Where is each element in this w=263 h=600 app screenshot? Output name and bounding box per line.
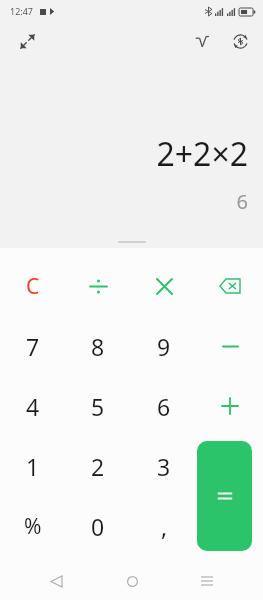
staticText: 9 [157, 331, 171, 362]
staticText: 0 [91, 511, 105, 542]
other: Divide [90, 278, 107, 295]
button[interactable]: 8 [65, 316, 131, 376]
button[interactable]: Collapse [10, 24, 44, 58]
button[interactable]: Recents [187, 562, 227, 600]
staticText: 3 [157, 451, 171, 482]
button[interactable]: Multiply [131, 256, 197, 316]
staticText: 5 [91, 391, 105, 422]
staticText: C [26, 272, 40, 301]
staticText: 7 [26, 331, 40, 362]
button[interactable]: , [131, 496, 197, 556]
button[interactable]: 4 [0, 376, 65, 436]
button[interactable]: 5 [65, 376, 131, 436]
staticText: % [24, 512, 42, 541]
button[interactable]: 1 [0, 436, 65, 496]
staticText: , [161, 511, 168, 542]
staticText: 2+2×2 [156, 132, 248, 176]
staticText: 2 [91, 451, 105, 482]
button[interactable]: Home [112, 562, 152, 600]
staticText: 1 [26, 451, 40, 482]
button[interactable]: Backspace [197, 256, 263, 316]
button[interactable]: 2 [65, 436, 131, 496]
staticText: 8 [91, 331, 105, 362]
other: Minus [223, 345, 238, 348]
staticText: 12:47 [10, 5, 34, 17]
staticText: 6 [157, 391, 171, 422]
button[interactable]: Plus [197, 376, 263, 436]
button[interactable]: Divide [65, 256, 131, 316]
button[interactable]: Currency converter [223, 24, 257, 58]
staticText: 4 [26, 391, 40, 422]
other: Multiply [157, 279, 172, 294]
button[interactable]: 7 [0, 316, 65, 376]
other: Backspace [220, 279, 240, 293]
button[interactable]: 6 [131, 376, 197, 436]
button[interactable]: C [0, 256, 65, 316]
button[interactable]: 0 [65, 496, 131, 556]
button[interactable]: % [0, 496, 65, 556]
button[interactable]: Equals [197, 441, 252, 551]
button[interactable]: 9 [131, 316, 197, 376]
button[interactable]: Back [36, 562, 76, 600]
other: Plus [222, 398, 238, 414]
button[interactable]: Minus [197, 316, 263, 376]
button[interactable]: Scientific [185, 24, 219, 58]
button[interactable]: 3 [131, 436, 197, 496]
staticText: 6 [236, 188, 248, 215]
